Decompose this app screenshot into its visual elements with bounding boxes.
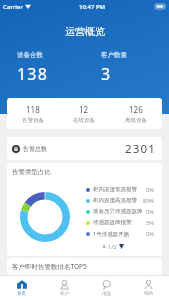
button[interactable]: Next page bbox=[119, 242, 124, 250]
button[interactable]: 消息 bbox=[85, 276, 127, 300]
staticText: 客户 bbox=[60, 291, 69, 297]
staticText: 客户数量 bbox=[101, 51, 127, 59]
staticText: 1号传感器开路 bbox=[93, 230, 130, 238]
staticText: 12 bbox=[79, 104, 89, 115]
button[interactable]: Previous page bbox=[101, 242, 106, 250]
button[interactable]: 1号传感器开路 bbox=[86, 228, 154, 239]
staticText: 首页 bbox=[17, 291, 26, 297]
staticText: 运营概览 bbox=[65, 25, 105, 38]
staticText: 设备台数 bbox=[17, 51, 43, 59]
button[interactable]: 柜内温度低温报警 bbox=[86, 184, 154, 195]
staticText: 138 bbox=[17, 63, 49, 85]
button[interactable]: 首页 bbox=[0, 276, 43, 300]
staticText: 0% bbox=[146, 208, 154, 215]
button[interactable]: 蒸发压力传感器故障 bbox=[86, 206, 154, 217]
staticText: 5% bbox=[146, 219, 154, 226]
staticText: Carrier bbox=[3, 3, 23, 11]
staticText: 告警类型占比 bbox=[12, 168, 51, 176]
staticText: 0% bbox=[146, 230, 154, 237]
staticText: 传感器故障报警 bbox=[93, 219, 132, 226]
staticText: 1/2 bbox=[108, 243, 117, 250]
button[interactable]: 118 bbox=[7, 98, 58, 129]
staticText: 告警设备 bbox=[22, 117, 44, 124]
staticText: 85% bbox=[143, 197, 154, 204]
staticText: 消息 bbox=[102, 291, 111, 297]
staticText: 蒸发压力传感器故障 bbox=[93, 208, 143, 215]
button[interactable]: 12 bbox=[58, 98, 110, 129]
staticText: 离线设备 bbox=[125, 117, 147, 124]
staticText: 我的 bbox=[144, 291, 153, 297]
staticText: 3 bbox=[101, 63, 112, 85]
staticText: 在线设备 bbox=[73, 117, 95, 124]
staticText: 告警总数 bbox=[23, 145, 47, 153]
staticText: 柜内温度低温报警 bbox=[93, 186, 137, 193]
button[interactable]: 126 bbox=[110, 98, 162, 129]
button[interactable]: 客户 bbox=[43, 276, 85, 300]
staticText: 118 bbox=[26, 104, 40, 115]
button[interactable]: 柜内温度高温报警 bbox=[86, 195, 154, 206]
button[interactable]: 我的 bbox=[127, 276, 169, 300]
staticText: 0% bbox=[146, 186, 154, 193]
staticText: 柜内温度高温报警 bbox=[93, 197, 137, 204]
staticText: 126 bbox=[129, 104, 143, 115]
staticText: 10:47 PM bbox=[79, 3, 106, 11]
staticText: 客户即时告警数排名TOP5 bbox=[12, 262, 87, 271]
staticText: 2301 bbox=[125, 141, 157, 157]
button[interactable]: 客户即时告警数排名TOP5 bbox=[7, 258, 162, 275]
button[interactable]: 传感器故障报警 bbox=[86, 217, 154, 228]
button[interactable]: 告警总数 bbox=[7, 137, 162, 160]
